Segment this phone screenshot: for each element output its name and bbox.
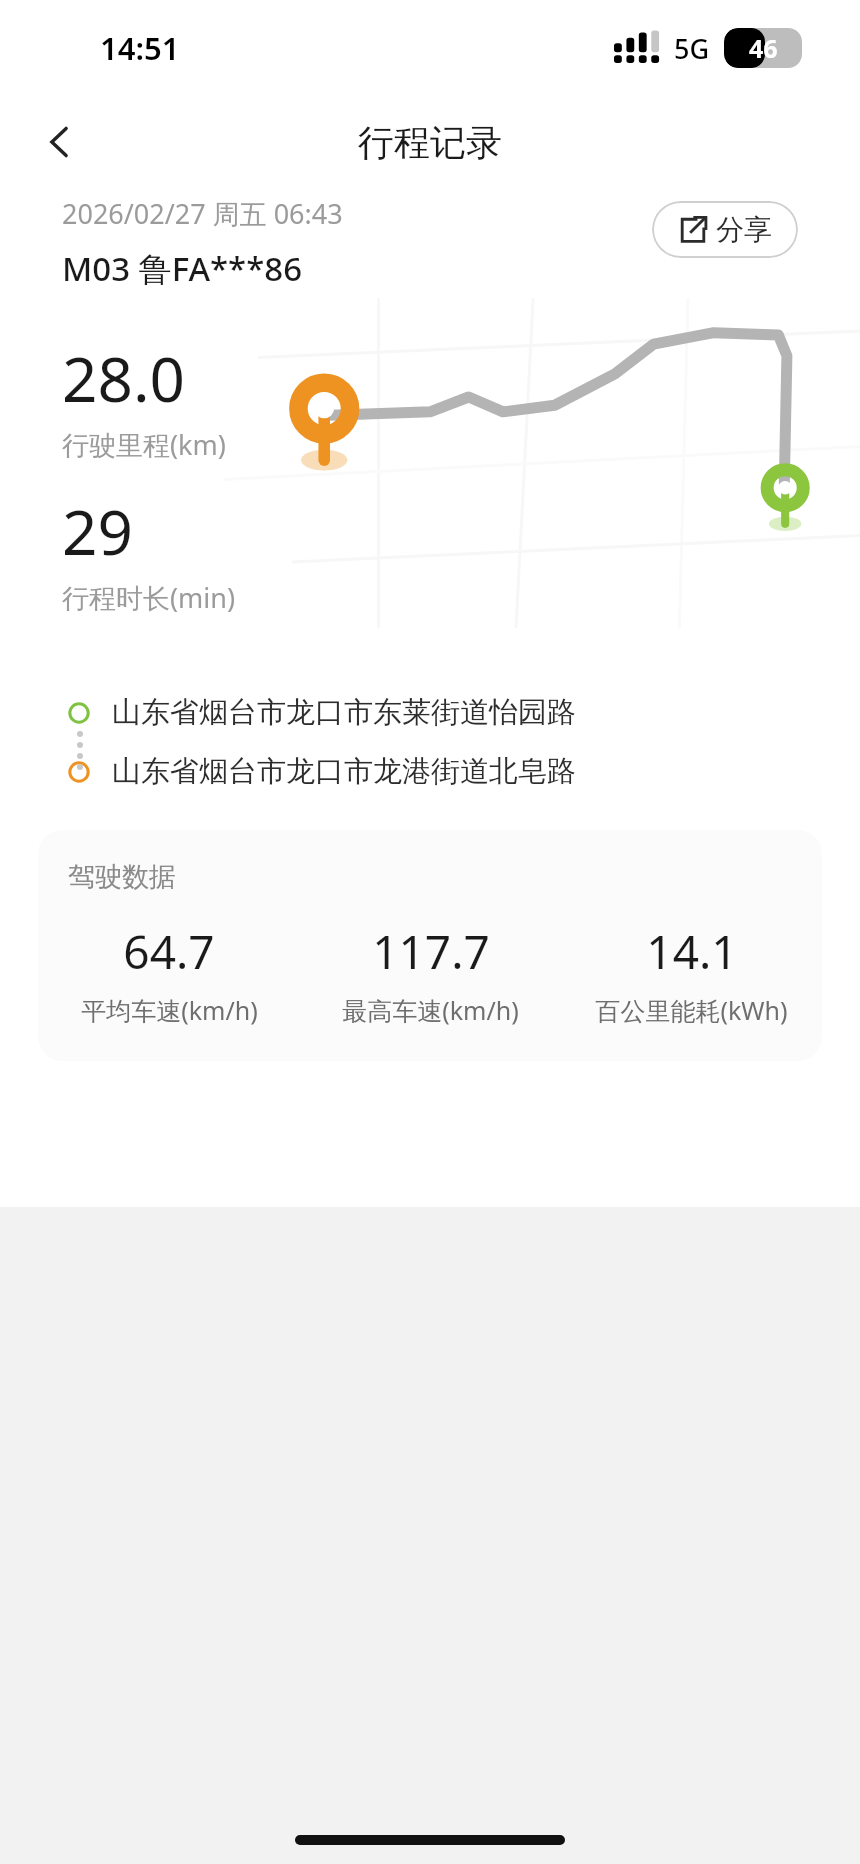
staticText: 64.7 — [123, 920, 215, 983]
staticText: 平均车速(km/h) — [81, 993, 258, 1027]
staticText: 驾驶数据 — [68, 860, 176, 894]
staticText: 46 — [749, 31, 778, 65]
staticText: 28.0 — [62, 336, 186, 420]
staticText: M03 鲁FA***86 — [62, 246, 303, 291]
button[interactable]: Back — [28, 110, 92, 174]
button[interactable]: 分享 — [652, 201, 798, 258]
staticText: 山东省烟台市龙口市龙港街道北皂路 — [112, 753, 576, 790]
staticText: 14.1 — [646, 920, 738, 983]
staticText: 百公里能耗(kWh) — [595, 993, 788, 1027]
staticText: 分享 — [716, 212, 772, 247]
staticText: 最高车速(km/h) — [342, 993, 519, 1027]
button[interactable]: 驾驶数据 — [38, 830, 822, 1061]
staticText: 14:51 — [100, 27, 180, 69]
staticText: 行驶里程(km) — [62, 426, 226, 463]
staticText: 2026/02/27 周五 06:43 — [62, 195, 343, 232]
staticText: 行程时长(min) — [62, 579, 236, 616]
staticText: 山东省烟台市龙口市东莱街道怡园路 — [112, 694, 576, 731]
staticText: 行程记录 — [358, 120, 502, 165]
staticText: 5G — [674, 30, 710, 67]
staticText: 117.7 — [372, 920, 490, 983]
staticText: 29 — [62, 489, 133, 573]
